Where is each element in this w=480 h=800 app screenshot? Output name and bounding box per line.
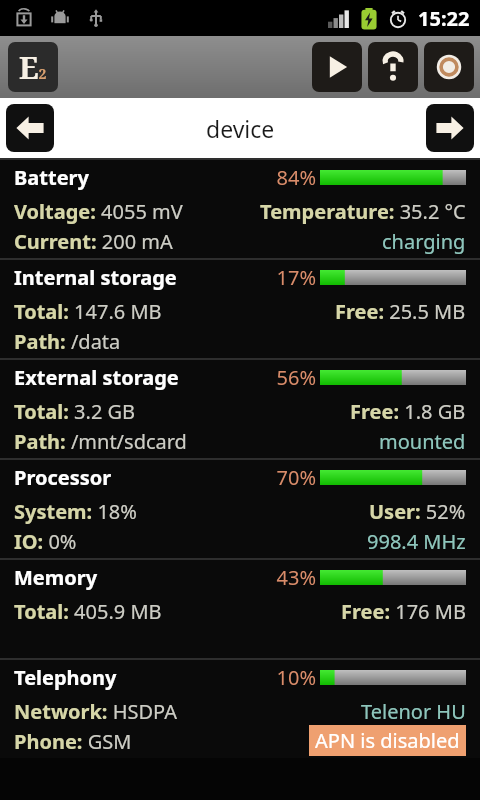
staticText: Free: 176 MB	[341, 598, 466, 625]
staticText: 10%	[270, 664, 316, 691]
button[interactable]: Settings	[424, 42, 474, 92]
staticText: Processor	[14, 464, 112, 491]
staticText: APN is disabled	[315, 727, 460, 754]
staticText: System: 18%	[14, 498, 137, 525]
staticText: Battery	[14, 164, 89, 191]
staticText: Internal storage	[14, 264, 177, 291]
staticText: Total: 3.2 GB	[14, 398, 136, 425]
staticText: Phone: GSM	[14, 728, 132, 755]
staticText: Free: 1.8 GB	[350, 398, 466, 425]
staticText: Free: 25.5 MB	[335, 298, 466, 325]
staticText: Telephony	[14, 664, 117, 691]
staticText: 70%	[270, 464, 316, 491]
button[interactable]: Next	[426, 104, 474, 152]
button[interactable]: Previous	[6, 104, 54, 152]
staticText: Path: /mnt/sdcard	[14, 428, 187, 455]
button[interactable]: Run	[312, 42, 362, 92]
staticText: User: 52%	[369, 498, 466, 525]
staticText: Current: 200 mA	[14, 228, 173, 255]
staticText: E2	[19, 47, 47, 88]
staticText: External storage	[14, 364, 179, 391]
staticText: 43%	[270, 564, 316, 591]
button[interactable]: Processor	[0, 458, 480, 558]
staticText: 56%	[270, 364, 316, 391]
staticText: 15:22	[418, 5, 470, 32]
staticText: 17%	[270, 264, 316, 291]
staticText: charging	[382, 228, 466, 255]
staticText: 998.4 MHz	[367, 528, 466, 555]
staticText: Total: 147.6 MB	[14, 298, 162, 325]
staticText: Temperature: 35.2 °C	[260, 198, 466, 225]
staticText: Total: 405.9 MB	[14, 598, 162, 625]
staticText: mounted	[379, 428, 466, 455]
staticText: Telenor HU	[361, 698, 466, 725]
button[interactable]: Help	[368, 42, 418, 92]
staticText: device	[206, 113, 275, 144]
button[interactable]: Battery	[0, 158, 480, 258]
button[interactable]: APN is disabled	[315, 727, 460, 754]
staticText: Path: /data	[14, 328, 121, 355]
staticText: Network: HSDPA	[14, 698, 177, 725]
button[interactable]: Elixir app logo	[8, 42, 58, 92]
button[interactable]: Telephony	[0, 658, 480, 758]
staticText: IO: 0%	[14, 528, 77, 555]
button[interactable]: Memory	[0, 558, 480, 658]
button[interactable]: External storage	[0, 358, 480, 458]
staticText: Voltage: 4055 mV	[14, 198, 183, 225]
staticText: disconnected	[340, 728, 466, 755]
staticText: 84%	[270, 164, 316, 191]
button[interactable]: Internal storage	[0, 258, 480, 358]
staticText: Memory	[14, 564, 98, 591]
